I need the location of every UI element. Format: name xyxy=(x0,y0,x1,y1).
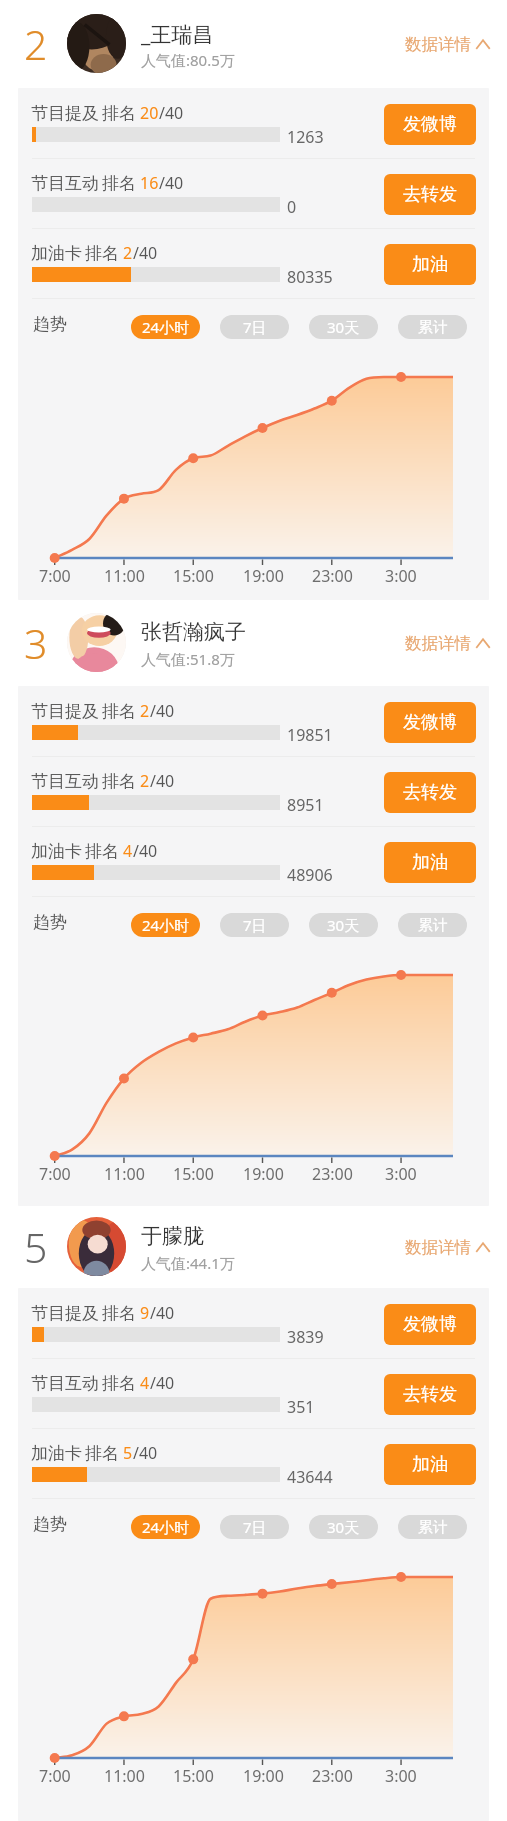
staticText: 发微博 xyxy=(403,1313,457,1336)
staticText: 19:00 xyxy=(243,565,284,587)
staticText: 加油卡 xyxy=(31,243,82,264)
staticText: 15:00 xyxy=(173,1765,214,1787)
button[interactable]: 累计 xyxy=(398,315,467,339)
staticText: 节目提及 xyxy=(31,701,99,722)
button[interactable]: 去转发 xyxy=(384,1374,476,1415)
staticText: 351 xyxy=(287,1396,315,1413)
staticText: 排名 xyxy=(102,701,136,722)
staticText: 排名 xyxy=(102,1303,136,1324)
staticText: 数据详情 xyxy=(405,1237,471,1258)
staticText: 发微博 xyxy=(403,711,457,734)
button[interactable]: 数据详情 xyxy=(387,0,507,88)
staticText: 80335 xyxy=(287,266,333,283)
staticText: 加油 xyxy=(412,253,448,276)
staticText: 2 xyxy=(123,242,133,264)
other: 收起数据详情 xyxy=(476,635,490,651)
staticText: 23:00 xyxy=(312,1163,353,1185)
button[interactable]: 7日 xyxy=(220,913,289,937)
staticText: 8951 xyxy=(287,794,324,811)
staticText: /40 xyxy=(159,172,184,194)
staticText: 3:00 xyxy=(385,1163,417,1185)
staticText: 去转发 xyxy=(403,183,457,206)
staticText: 7日 xyxy=(243,317,267,337)
staticText: 排名 xyxy=(102,173,136,194)
staticText: 加油 xyxy=(412,851,448,874)
button[interactable]: 累计 xyxy=(398,1515,467,1539)
staticText: 加油卡 xyxy=(31,1443,82,1464)
staticText: 30天 xyxy=(327,317,360,337)
staticText: 23:00 xyxy=(312,565,353,587)
button[interactable]: 24小时 xyxy=(131,913,200,937)
staticText: 累计 xyxy=(418,1518,448,1537)
button[interactable]: 加油 xyxy=(384,842,476,883)
staticText: 24小时 xyxy=(142,1517,190,1537)
staticText: 15:00 xyxy=(173,565,214,587)
staticText: 43644 xyxy=(287,1466,333,1483)
staticText: 5 xyxy=(123,1442,133,1464)
staticText: 去转发 xyxy=(403,781,457,804)
staticText: 7日 xyxy=(243,915,267,935)
staticText: 3 xyxy=(24,615,48,671)
staticText: 加油卡 xyxy=(31,841,82,862)
staticText: 排名 xyxy=(85,841,119,862)
staticText: /40 xyxy=(150,770,175,792)
staticText: 节目互动 xyxy=(31,1373,99,1394)
staticText: 4 xyxy=(140,1372,150,1394)
staticText: 3:00 xyxy=(385,1765,417,1787)
staticText: 趋势 xyxy=(33,912,67,933)
staticText: 4 xyxy=(123,840,133,862)
staticText: 张哲瀚疯子 xyxy=(141,619,246,645)
button[interactable]: 发微博 xyxy=(384,702,476,743)
button[interactable]: 30天 xyxy=(309,315,378,339)
staticText: 1263 xyxy=(287,126,324,143)
staticText: 9 xyxy=(140,1302,150,1324)
staticText: 人气值:80.5万 xyxy=(141,50,235,70)
staticText: 11:00 xyxy=(104,565,145,587)
staticText: /40 xyxy=(133,1442,158,1464)
button[interactable]: 24小时 xyxy=(131,1515,200,1539)
button[interactable]: 加油 xyxy=(384,244,476,285)
button[interactable]: 30天 xyxy=(309,1515,378,1539)
button[interactable]: 去转发 xyxy=(384,772,476,813)
staticText: 2 xyxy=(24,16,48,72)
staticText: _王瑞昌 xyxy=(141,20,214,49)
staticText: 20 xyxy=(140,102,159,124)
staticText: 人气值:51.8万 xyxy=(141,649,235,669)
staticText: /40 xyxy=(150,1302,175,1324)
staticText: 节目互动 xyxy=(31,771,99,792)
staticText: 15:00 xyxy=(173,1163,214,1185)
staticText: 排名 xyxy=(85,243,119,264)
button[interactable]: 数据详情 xyxy=(387,1206,507,1288)
button[interactable]: 发微博 xyxy=(384,104,476,145)
button[interactable]: 7日 xyxy=(220,1515,289,1539)
staticText: 19:00 xyxy=(243,1163,284,1185)
button[interactable]: 累计 xyxy=(398,913,467,937)
staticText: 于朦胧 xyxy=(141,1223,204,1249)
staticText: 2 xyxy=(140,770,150,792)
staticText: 累计 xyxy=(418,318,448,337)
staticText: 30天 xyxy=(327,915,360,935)
staticText: 趋势 xyxy=(33,1514,67,1535)
staticText: /40 xyxy=(133,242,158,264)
button[interactable]: 7日 xyxy=(220,315,289,339)
staticText: 5 xyxy=(24,1219,48,1275)
button[interactable]: 24小时 xyxy=(131,315,200,339)
staticText: 19:00 xyxy=(243,1765,284,1787)
staticText: /40 xyxy=(150,700,175,722)
staticText: 排名 xyxy=(102,1373,136,1394)
other: 收起数据详情 xyxy=(476,36,490,52)
button[interactable]: 30天 xyxy=(309,913,378,937)
staticText: 16 xyxy=(140,172,159,194)
button[interactable]: 发微博 xyxy=(384,1304,476,1345)
staticText: 节目提及 xyxy=(31,1303,99,1324)
button[interactable]: 数据详情 xyxy=(387,600,507,686)
staticText: 11:00 xyxy=(104,1765,145,1787)
staticText: 7:00 xyxy=(39,1163,71,1185)
staticText: 7:00 xyxy=(39,1765,71,1787)
button[interactable]: 加油 xyxy=(384,1444,476,1485)
staticText: 3:00 xyxy=(385,565,417,587)
other: 收起数据详情 xyxy=(476,1239,490,1255)
button[interactable]: 去转发 xyxy=(384,174,476,215)
staticText: 趋势 xyxy=(33,314,67,335)
staticText: 排名 xyxy=(102,103,136,124)
